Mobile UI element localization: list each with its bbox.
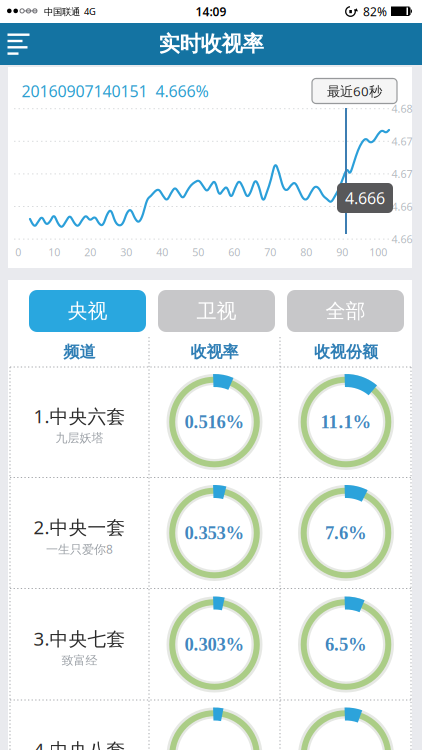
- staticText: 4.67: [391, 167, 412, 181]
- staticText: 4.68: [391, 102, 412, 116]
- staticText: 0.516%: [184, 412, 244, 432]
- staticText: 1.中央六套: [33, 404, 125, 428]
- staticText: 4.67: [391, 134, 412, 148]
- staticText: 一生只爱你8: [46, 541, 113, 557]
- staticText: 最近60秒: [327, 82, 382, 100]
- staticText: 10: [48, 245, 60, 259]
- staticText: 致富经: [61, 653, 97, 668]
- staticText: 中国联通 4G: [44, 5, 96, 18]
- staticText: 2.中央一套: [33, 515, 125, 539]
- staticText: 4.666: [345, 187, 385, 209]
- staticText: 100: [369, 245, 387, 259]
- staticText: 4.66: [391, 232, 412, 246]
- staticText: 70: [264, 245, 276, 259]
- staticText: 九层妖塔: [55, 431, 103, 445]
- staticText: 14:09: [195, 3, 226, 19]
- staticText: 82%: [363, 3, 387, 19]
- staticText: 90: [336, 245, 348, 259]
- staticText: 卫视: [196, 299, 236, 323]
- button[interactable]: 最近60秒: [312, 78, 397, 103]
- staticText: 0.353%: [184, 523, 244, 543]
- staticText: 4.66: [391, 199, 412, 214]
- staticText: 30: [120, 245, 132, 259]
- staticText: 频道: [63, 342, 95, 362]
- staticText: 实时收视率: [158, 31, 263, 57]
- staticText: 0.303%: [184, 634, 244, 655]
- staticText: 50: [192, 245, 204, 259]
- staticText: 7.6%: [325, 523, 367, 543]
- staticText: 央视: [67, 299, 107, 323]
- button[interactable]: 菜单: [4, 30, 34, 58]
- staticText: 60: [228, 245, 240, 259]
- staticText: 80: [300, 245, 312, 259]
- staticText: 6.5%: [325, 634, 367, 655]
- staticText: 0: [15, 245, 21, 259]
- button[interactable]: 卫视: [158, 290, 275, 332]
- staticText: 3.中央七套: [33, 626, 125, 651]
- staticText: 全部: [325, 299, 365, 323]
- staticText: 收视率: [190, 342, 238, 362]
- staticText: 收视份额: [314, 342, 378, 362]
- staticText: 4.中央八套: [33, 737, 125, 750]
- staticText: 20160907140151 4.666%: [21, 80, 208, 102]
- staticText: 11.1%: [320, 412, 371, 432]
- button[interactable]: 央视: [29, 290, 146, 332]
- button[interactable]: 全部: [287, 290, 404, 332]
- staticText: 40: [156, 245, 168, 259]
- staticText: 20: [84, 245, 96, 259]
